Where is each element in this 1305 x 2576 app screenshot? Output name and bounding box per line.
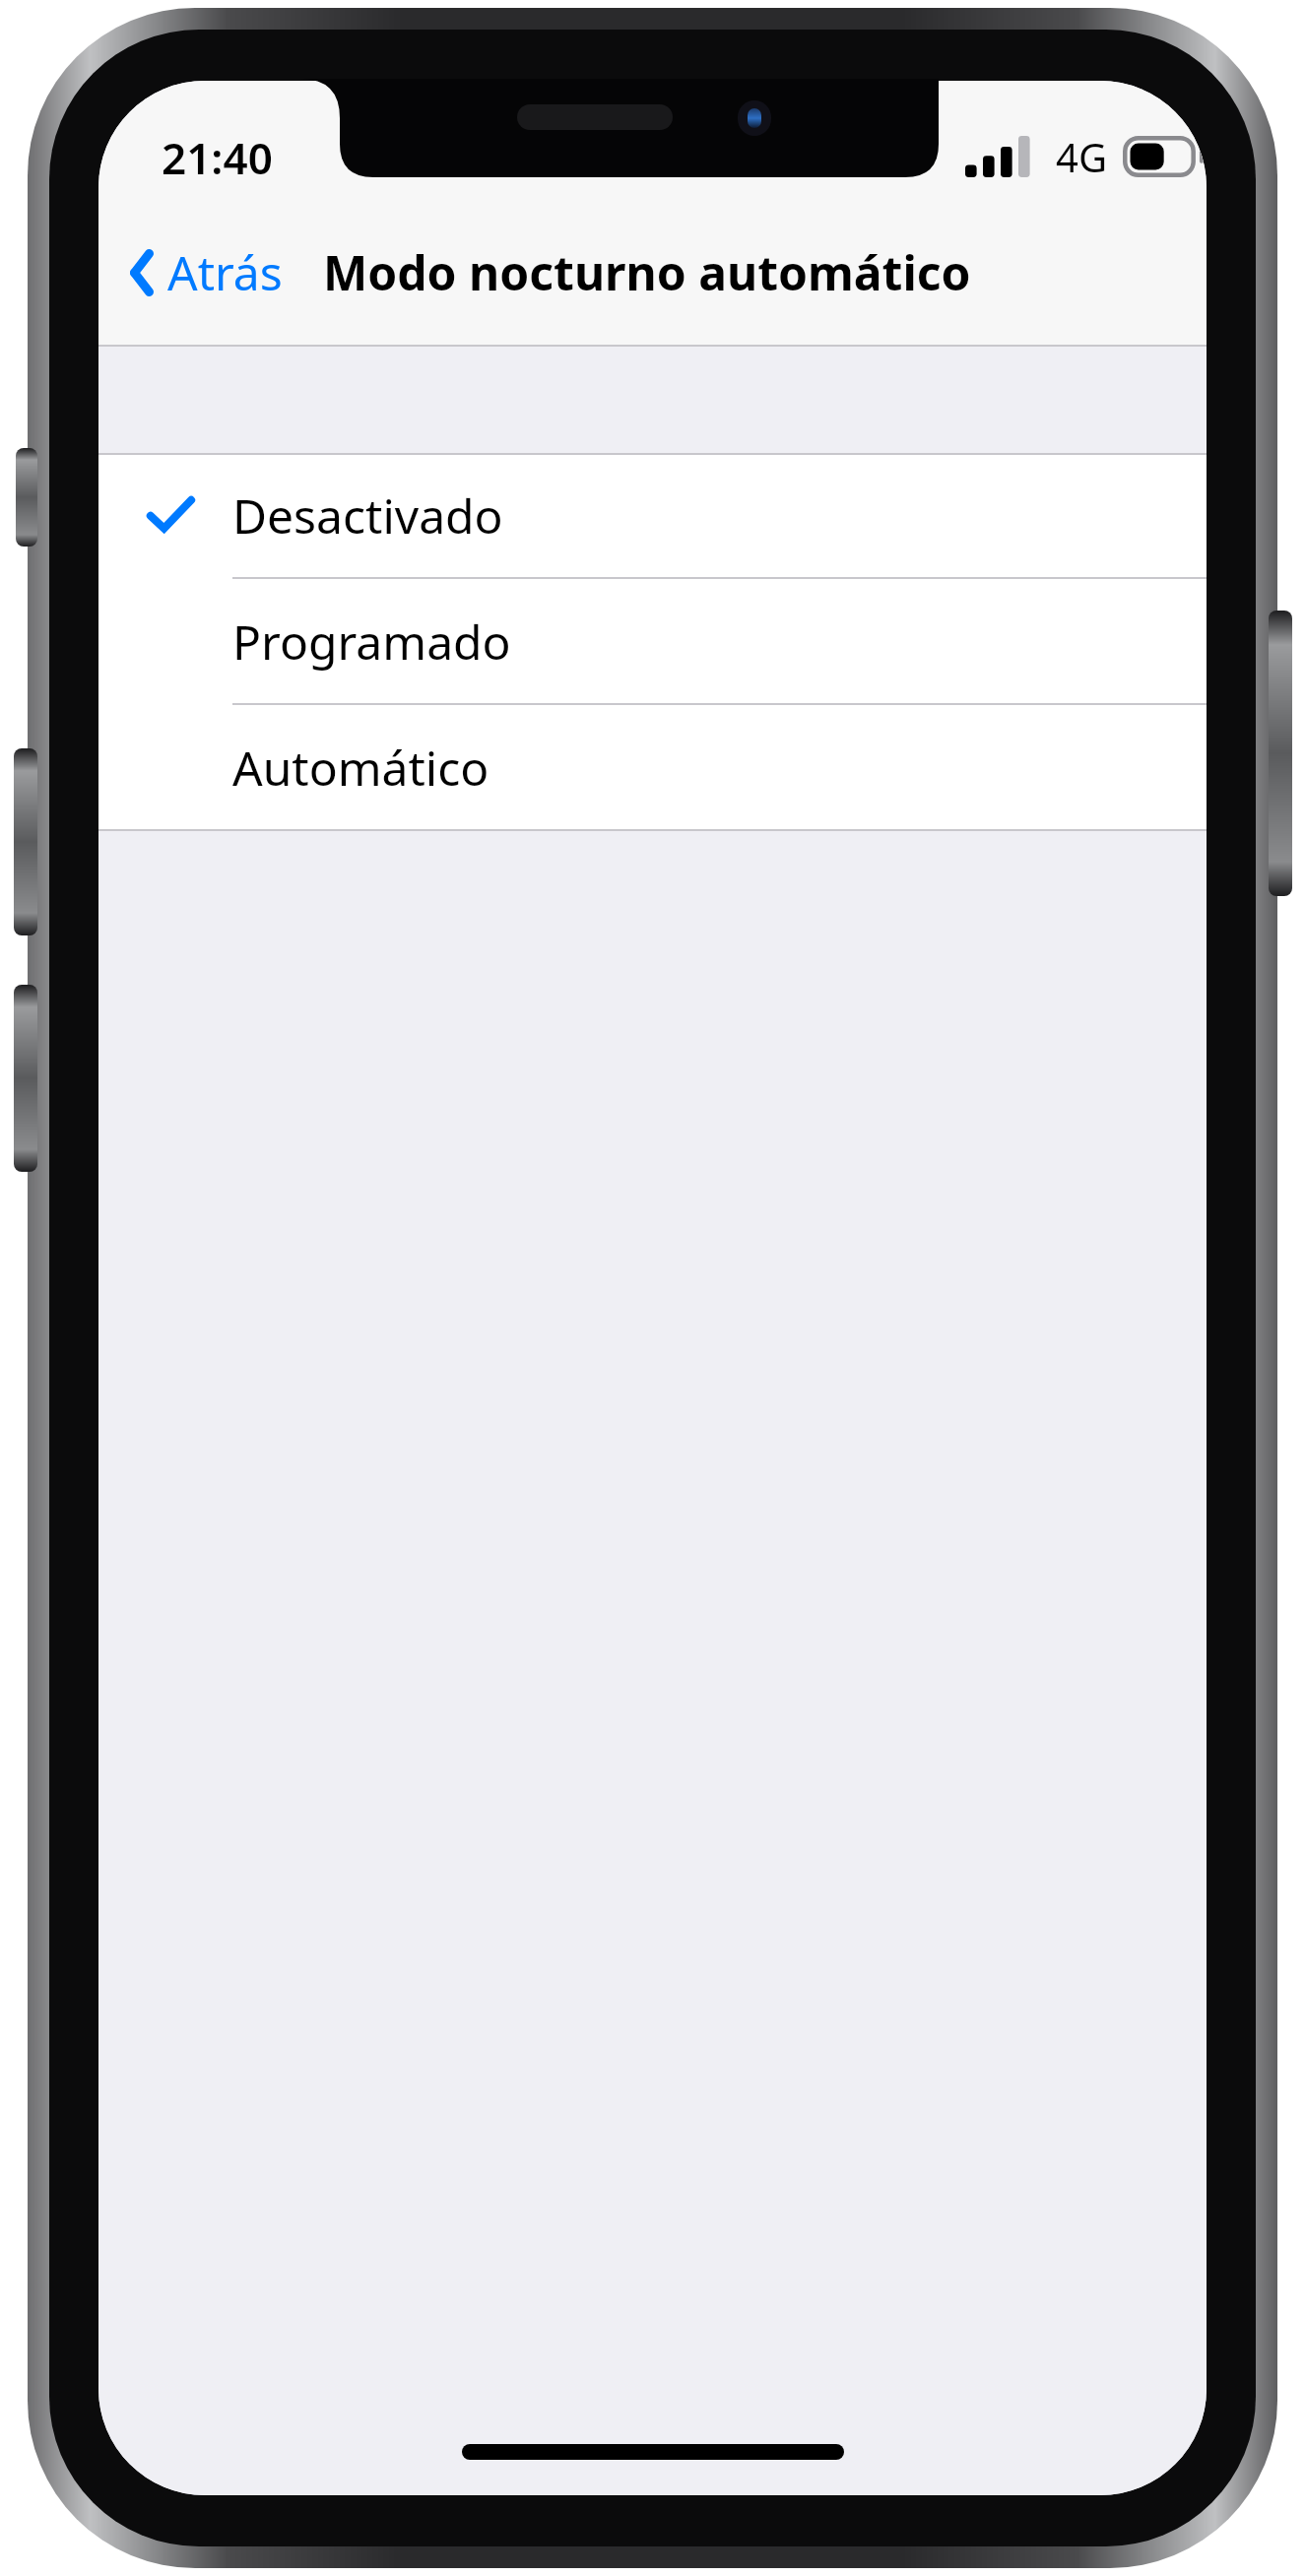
button[interactable]: Programado xyxy=(98,579,1207,703)
button[interactable]: Atrás xyxy=(112,223,298,322)
staticText: Automático xyxy=(232,736,489,800)
button[interactable]: Automático xyxy=(98,705,1207,829)
staticText: 4G xyxy=(1056,130,1107,183)
staticText: Modo nocturno automático xyxy=(323,240,971,304)
button[interactable]: Desactivado xyxy=(98,453,1207,577)
staticText: 21:40 xyxy=(162,128,273,187)
staticText: Programado xyxy=(232,610,511,674)
staticText: Desactivado xyxy=(232,483,503,547)
staticText: Atrás xyxy=(167,240,283,304)
